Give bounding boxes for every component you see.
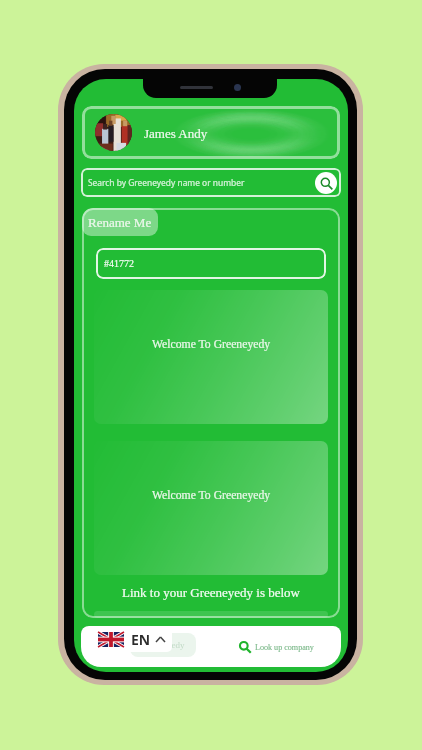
- button[interactable]: [94, 611, 328, 618]
- staticText: Look up company: [255, 643, 314, 652]
- staticText: EN: [131, 630, 151, 649]
- button[interactable]: Rename Me: [82, 208, 158, 236]
- button[interactable]: EN: [82, 627, 172, 652]
- staticText: Search by Greeneyedy name or number: [88, 177, 245, 188]
- button[interactable]: Search: [315, 172, 337, 194]
- staticText: Rename Me: [88, 215, 152, 229]
- staticText: James Andy: [144, 126, 208, 140]
- button[interactable]: Look up company: [239, 641, 314, 653]
- staticText: Welcome To Greeneyedy: [152, 338, 271, 351]
- button[interactable]: Welcome To Greeneyedy: [94, 290, 328, 424]
- button[interactable]: James Andy: [82, 106, 340, 159]
- staticText: Welcome To Greeneyedy: [152, 489, 271, 502]
- button[interactable]: Welcome To Greeneyedy: [94, 441, 328, 575]
- staticText: Greeneyedy: [141, 640, 185, 650]
- staticText: Link to your Greeneyedy is below: [82, 585, 340, 599]
- staticText: #41772: [104, 258, 134, 269]
- button[interactable]: #41772: [96, 248, 326, 279]
- button[interactable]: Search by Greeneyedy name or number: [81, 168, 341, 197]
